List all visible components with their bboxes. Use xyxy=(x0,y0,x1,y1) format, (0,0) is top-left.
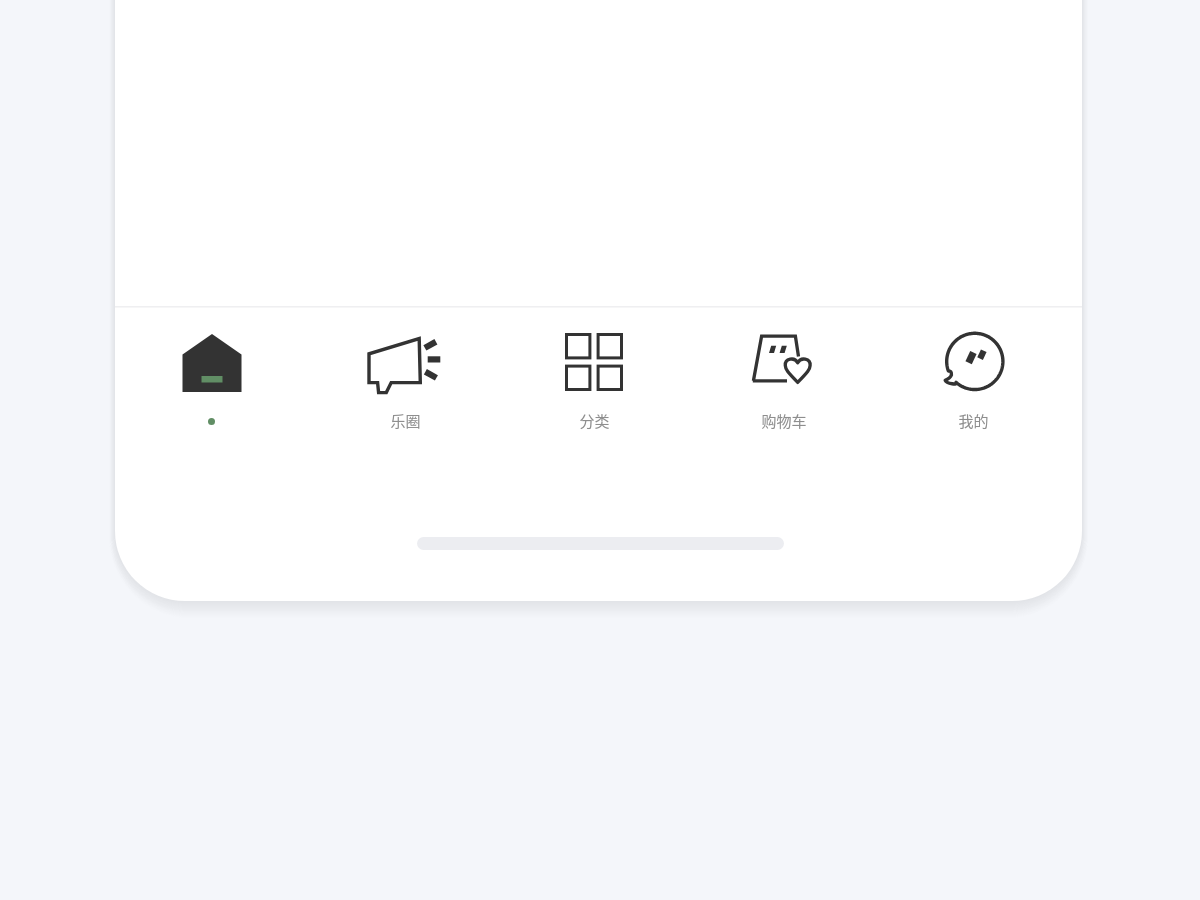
staticText: 分类 xyxy=(579,410,610,432)
button[interactable]: 购物车 xyxy=(724,307,844,437)
staticText: 我的 xyxy=(958,410,989,432)
button[interactable]: 首页 xyxy=(152,307,272,437)
staticText: 乐圈 xyxy=(390,410,421,432)
staticText: 购物车 xyxy=(761,410,807,432)
button[interactable]: 我的 xyxy=(913,307,1033,437)
button[interactable]: 乐圈 xyxy=(345,307,465,437)
button[interactable]: 分类 xyxy=(534,307,654,437)
